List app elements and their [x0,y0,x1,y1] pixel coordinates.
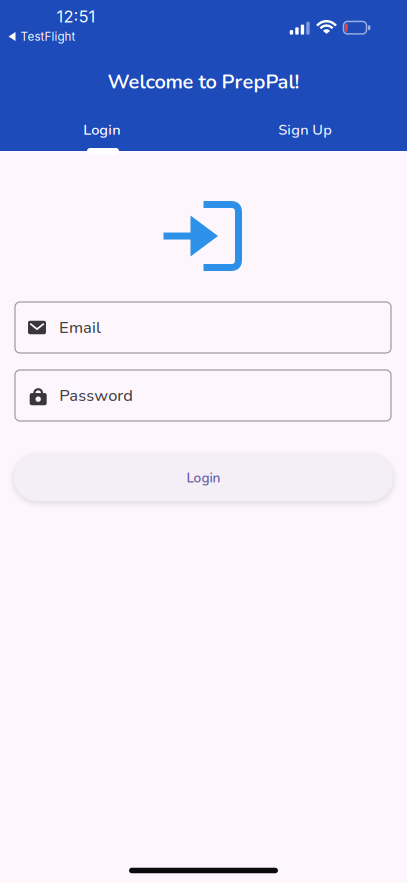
button[interactable]: Login [0,112,203,148]
button[interactable]: Sign Up [203,112,407,148]
staticText: Login [83,120,120,140]
button[interactable]: Password [15,370,391,421]
staticText: 12:51 [56,6,95,26]
button[interactable]: Login [14,455,393,501]
button[interactable]: Email [15,302,391,353]
staticText: Login [186,469,220,487]
staticText: Welcome to PrepPal! [107,68,299,96]
staticText: Password [59,384,133,407]
staticText: Sign Up [278,120,332,140]
staticText: Email [59,316,101,339]
staticText: TestFlight [20,29,75,43]
